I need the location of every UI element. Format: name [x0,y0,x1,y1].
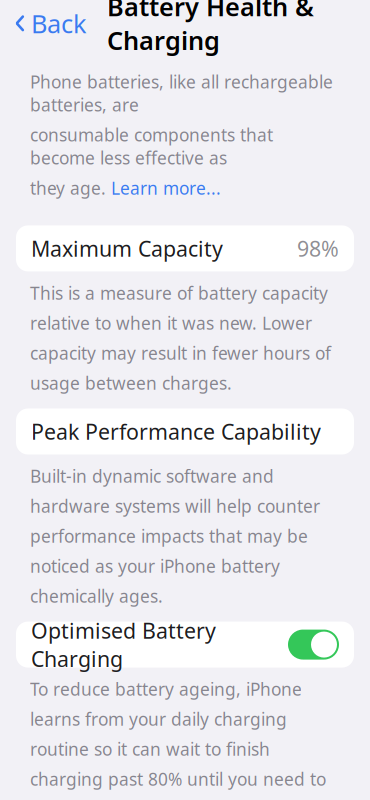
staticText: Maximum Capacity [31,234,223,263]
staticText: This is a measure of battery capacity re… [30,281,331,394]
staticText: Battery Health & Charging [107,0,314,57]
button[interactable]: Optimised Battery Charging [288,630,339,660]
staticText: To reduce battery ageing, iPhone learns … [30,678,326,800]
staticText: Learn more... [111,176,221,199]
staticText: Back [31,6,87,40]
staticText: consumable components that become less e… [30,123,273,169]
staticText: Peak Performance Capability [31,417,321,446]
staticText: Optimised Battery Charging [31,616,216,673]
staticText: Built-in dynamic software and hardware s… [30,464,320,608]
staticText: 98% [297,234,339,263]
button[interactable]: Back [10,0,91,46]
button[interactable]: Learn more... [111,176,221,199]
staticText: Phone batteries, like all rechargeable b… [30,70,333,116]
staticText: they age. [30,176,111,199]
